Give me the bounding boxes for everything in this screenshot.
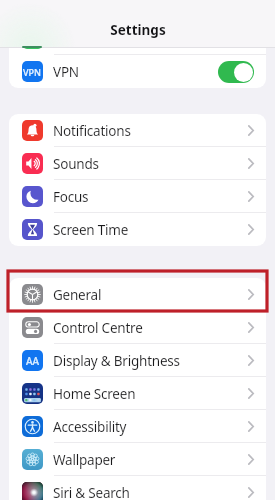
staticText: Screen Time — [53, 221, 129, 239]
button[interactable]: General — [9, 278, 266, 311]
staticText: Settings — [110, 21, 166, 39]
staticText: Control Centre — [53, 319, 143, 337]
staticText: General — [53, 286, 102, 304]
button[interactable]: Accessibility — [9, 410, 266, 443]
staticText: Siri & Search — [53, 484, 130, 500]
button[interactable]: Focus — [9, 180, 266, 213]
staticText: Personal Hotspot — [53, 30, 160, 48]
button[interactable]: VPN toggle — [218, 61, 254, 83]
button[interactable]: Sounds — [9, 147, 266, 180]
staticText: Sounds — [53, 155, 99, 173]
button[interactable]: Siri & Search — [9, 476, 266, 500]
staticText: Accessibility — [53, 418, 127, 436]
button[interactable]: Wallpaper — [9, 443, 266, 476]
button[interactable]: Notifications — [9, 114, 266, 147]
button[interactable]: Screen Time — [9, 213, 266, 246]
button[interactable]: Home Screen — [9, 377, 266, 410]
staticText: Notifications — [53, 122, 131, 140]
staticText: VPN — [53, 63, 79, 81]
staticText: Focus — [53, 188, 89, 206]
button[interactable]: Control Centre — [9, 311, 266, 344]
staticText: Home Screen — [53, 385, 136, 403]
button[interactable]: VPN — [9, 55, 266, 88]
staticText: AA — [26, 354, 40, 368]
button[interactable]: AA — [9, 344, 266, 377]
staticText: Wallpaper — [53, 451, 116, 469]
button[interactable]: Personal Hotspot — [9, 22, 266, 55]
staticText: Display & Brightness — [53, 352, 180, 370]
staticText: VPN — [23, 66, 42, 78]
